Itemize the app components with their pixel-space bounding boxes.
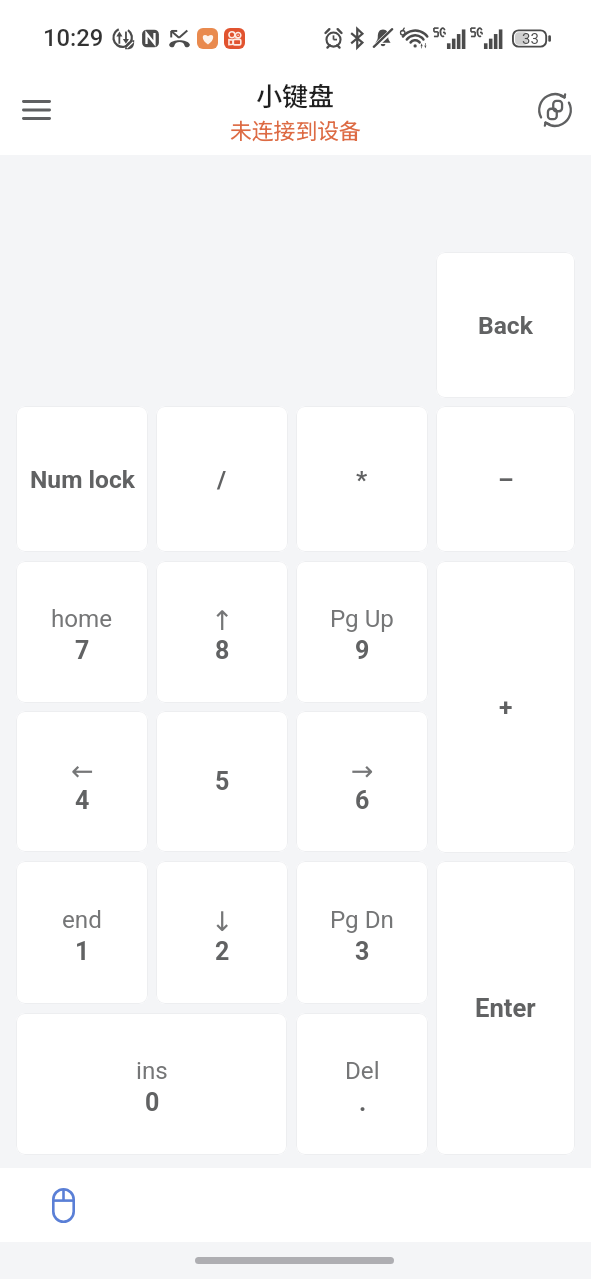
button[interactable]: Back (436, 252, 575, 398)
button[interactable]: Del (296, 1013, 428, 1155)
button[interactable]: Multiply (296, 406, 428, 552)
staticText: 10:29 (43, 24, 104, 52)
button[interactable]: Pg Dn (296, 861, 428, 1004)
staticText: Enter (475, 993, 536, 1023)
staticText: ↑ (211, 605, 234, 633)
staticText: Back (478, 311, 533, 340)
button[interactable]: ← (16, 711, 148, 852)
button[interactable]: ↑ (156, 561, 288, 703)
staticText: 33 (522, 30, 539, 48)
staticText: 2 (215, 937, 230, 966)
staticText: 9 (355, 636, 370, 665)
button[interactable]: home (16, 561, 148, 703)
staticText: Pg Dn (330, 906, 394, 934)
button[interactable]: end (16, 861, 148, 1004)
button[interactable]: Mouse mode (40, 1182, 86, 1228)
staticText: . (359, 1088, 367, 1117)
staticText: Del (345, 1057, 380, 1085)
staticText: + (499, 693, 513, 722)
button[interactable]: Num lock (16, 406, 148, 552)
staticText: Pg Up (330, 605, 394, 633)
staticText: 1 (75, 937, 90, 966)
button[interactable]: Reconnect (531, 86, 579, 134)
staticText: Num lock (30, 465, 135, 494)
staticText: 6 (355, 786, 370, 815)
button[interactable]: ins (16, 1013, 287, 1155)
button[interactable]: Menu (12, 86, 60, 134)
staticText: home (51, 605, 113, 633)
button[interactable]: Minus (436, 406, 575, 552)
staticText: end (62, 906, 102, 934)
staticText: 3 (355, 937, 370, 966)
staticText: 4 (75, 786, 90, 815)
button[interactable]: Plus (436, 561, 575, 853)
staticText: 7 (75, 636, 90, 665)
button[interactable]: Divide (156, 406, 288, 552)
staticText: 小键盘 (256, 76, 335, 114)
staticText: * (356, 465, 368, 494)
button[interactable]: Pg Up (296, 561, 428, 703)
button[interactable]: 5 (156, 711, 288, 852)
staticText: 5 (215, 767, 230, 796)
button[interactable]: Enter (436, 861, 575, 1155)
staticText: ← (71, 755, 94, 783)
staticText: / (217, 465, 227, 494)
button[interactable]: ↓ (156, 861, 288, 1004)
staticText: → (351, 755, 374, 783)
staticText: – (498, 465, 514, 494)
staticText: 0 (145, 1088, 160, 1117)
staticText: 8 (215, 636, 230, 665)
button[interactable]: → (296, 711, 428, 852)
staticText: ins (136, 1057, 168, 1085)
staticText: ↓ (211, 906, 234, 934)
staticText: 未连接到设备 (230, 114, 361, 146)
